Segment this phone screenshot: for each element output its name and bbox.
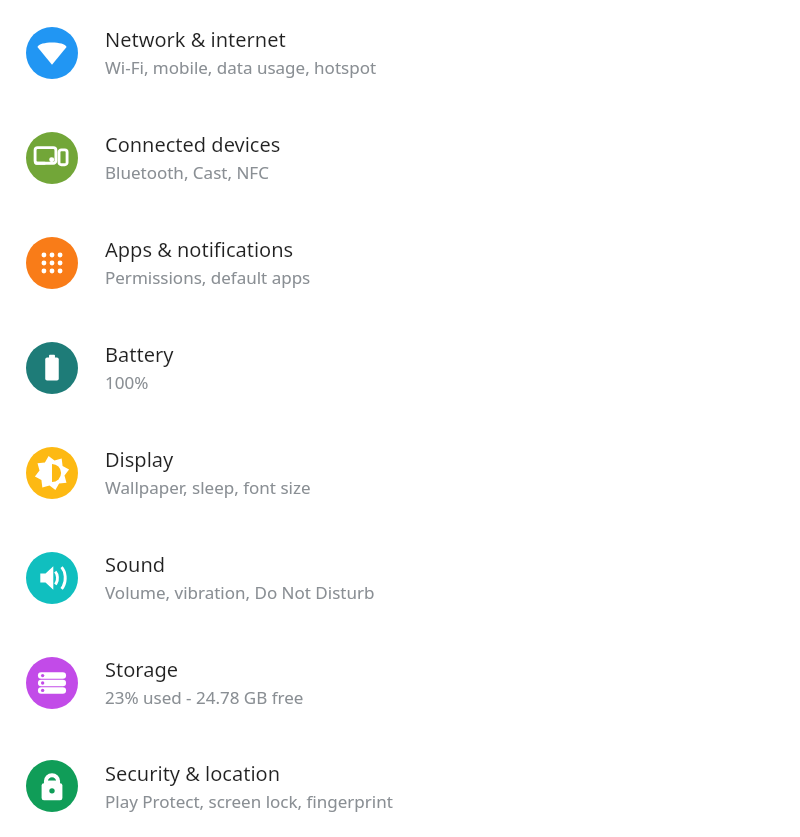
other: Battery (26, 342, 78, 394)
other: Storage (26, 657, 78, 709)
staticText: Volume, vibration, Do Not Disturb (105, 581, 375, 604)
button[interactable]: Battery (0, 315, 800, 420)
button[interactable]: Sound (0, 525, 800, 630)
staticText: 23% used - 24.78 GB free (105, 686, 304, 709)
other: Apps and notifications (26, 237, 78, 289)
button[interactable]: Display (0, 420, 800, 525)
staticText: Permissions, default apps (105, 266, 311, 289)
staticText: Bluetooth, Cast, NFC (105, 161, 269, 184)
staticText: Storage (105, 656, 178, 683)
other: Network and internet (26, 27, 78, 79)
staticText: Connected devices (105, 131, 281, 158)
staticText: Wi-Fi, mobile, data usage, hotspot (105, 56, 377, 79)
other: Connected devices (26, 132, 78, 184)
staticText: Display (105, 446, 174, 473)
other: Security and location (26, 760, 78, 812)
button[interactable]: Storage (0, 630, 800, 735)
staticText: Wallpaper, sleep, font size (105, 476, 311, 499)
other: Display (26, 447, 78, 499)
button[interactable]: Connected devices (0, 105, 800, 210)
staticText: Battery (105, 341, 174, 368)
staticText: Apps & notifications (105, 236, 294, 263)
button[interactable]: Network and internet (0, 0, 800, 105)
staticText: Play Protect, screen lock, fingerprint (105, 790, 393, 813)
staticText: Network & internet (105, 26, 286, 53)
staticText: Security & location (105, 760, 281, 787)
staticText: 100% (105, 371, 149, 394)
other: Sound (26, 552, 78, 604)
staticText: Sound (105, 551, 166, 578)
button[interactable]: Apps and notifications (0, 210, 800, 315)
button[interactable]: Security and location (0, 735, 800, 837)
